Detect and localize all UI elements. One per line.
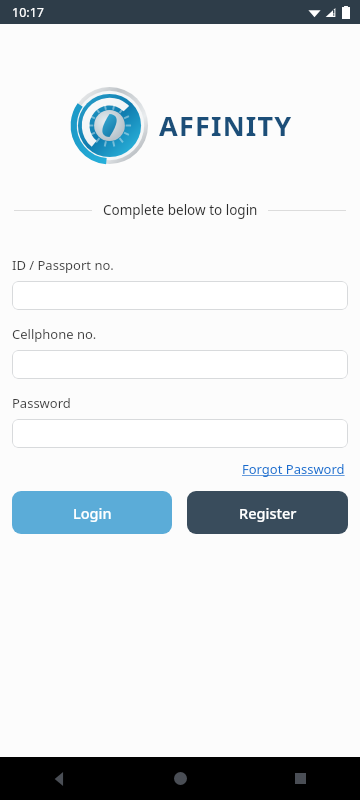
button[interactable]: Recent apps	[240, 757, 360, 800]
button[interactable]: Back	[0, 757, 120, 800]
staticText: Password	[12, 394, 71, 412]
staticText: Login	[73, 503, 112, 523]
staticText: ID / Passport no.	[12, 256, 114, 274]
button[interactable]: Register	[187, 491, 348, 534]
staticText: Register	[239, 503, 297, 523]
button[interactable]: Forgot Password	[240, 458, 347, 480]
button[interactable]: Home	[120, 757, 240, 800]
button[interactable]: Login	[12, 491, 172, 534]
staticText: AFFINITY	[159, 107, 293, 144]
staticText: Forgot Password	[242, 460, 345, 478]
button[interactable]	[12, 281, 348, 310]
staticText: Complete below to login	[103, 201, 258, 219]
button[interactable]	[12, 419, 348, 448]
staticText: Cellphone no.	[12, 325, 97, 343]
staticText: 10:17	[12, 4, 44, 21]
button[interactable]	[12, 350, 348, 379]
